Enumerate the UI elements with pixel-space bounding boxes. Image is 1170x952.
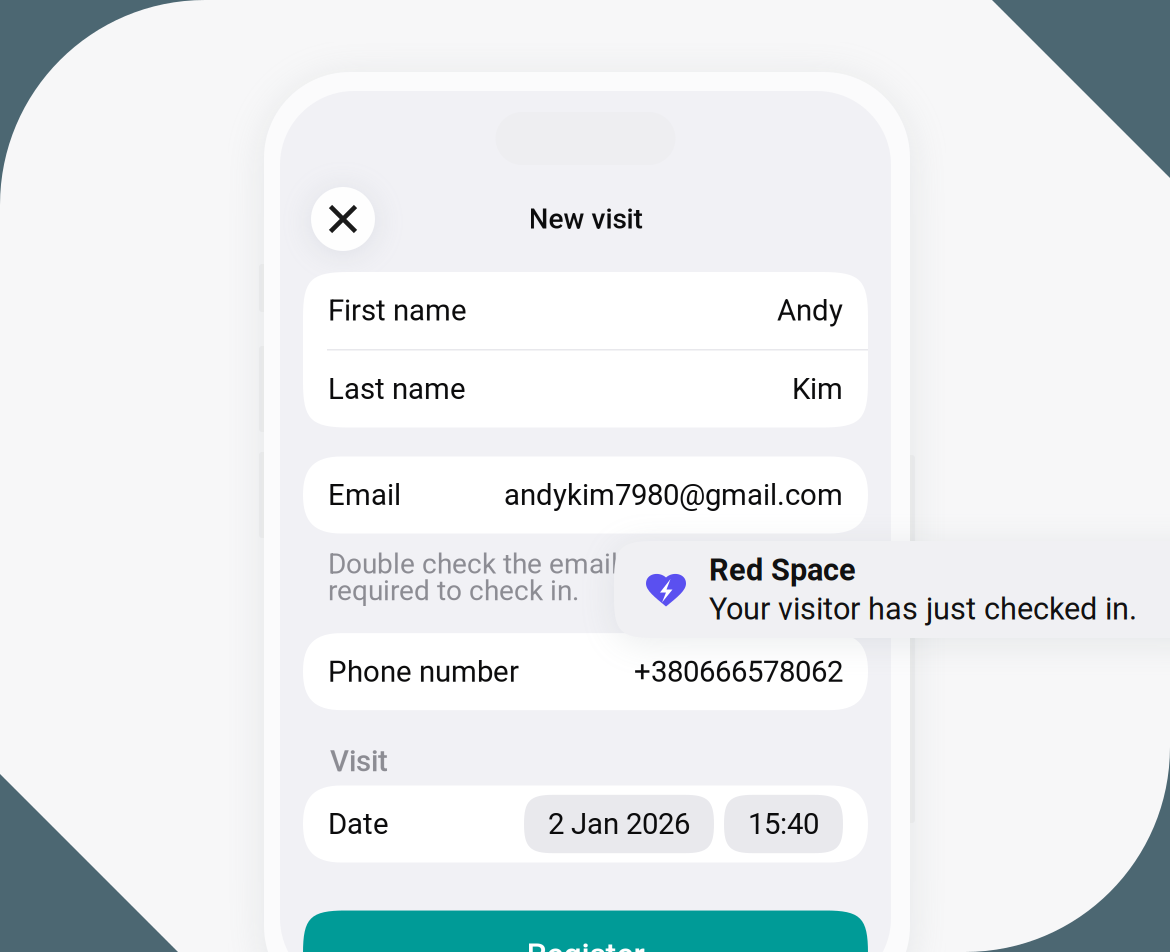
staticText: Red Space	[709, 552, 856, 588]
staticText: Your visitor has just checked in.	[709, 591, 1137, 627]
staticText: 15:40	[748, 807, 819, 841]
staticText: Email	[328, 478, 401, 512]
staticText: First name	[328, 293, 467, 328]
staticText: Kim	[792, 372, 843, 406]
staticText: required to check in.	[328, 574, 579, 607]
staticText: andykim7980@gmail.com	[504, 478, 843, 512]
button[interactable]: Register	[303, 910, 868, 952]
staticText: +380666578062	[634, 654, 843, 689]
staticText: 2 Jan 2026	[548, 807, 690, 841]
staticText: Phone number	[328, 654, 519, 689]
staticText: New visit	[528, 203, 642, 235]
staticText: Date	[328, 807, 389, 841]
staticText: Double check the email. We'll use it to …	[328, 547, 997, 580]
staticText: Register	[526, 936, 644, 952]
staticText: Visit	[330, 744, 388, 778]
staticText: Last name	[328, 372, 466, 406]
staticText: Andy	[777, 293, 843, 328]
button[interactable]: Close	[311, 187, 375, 251]
